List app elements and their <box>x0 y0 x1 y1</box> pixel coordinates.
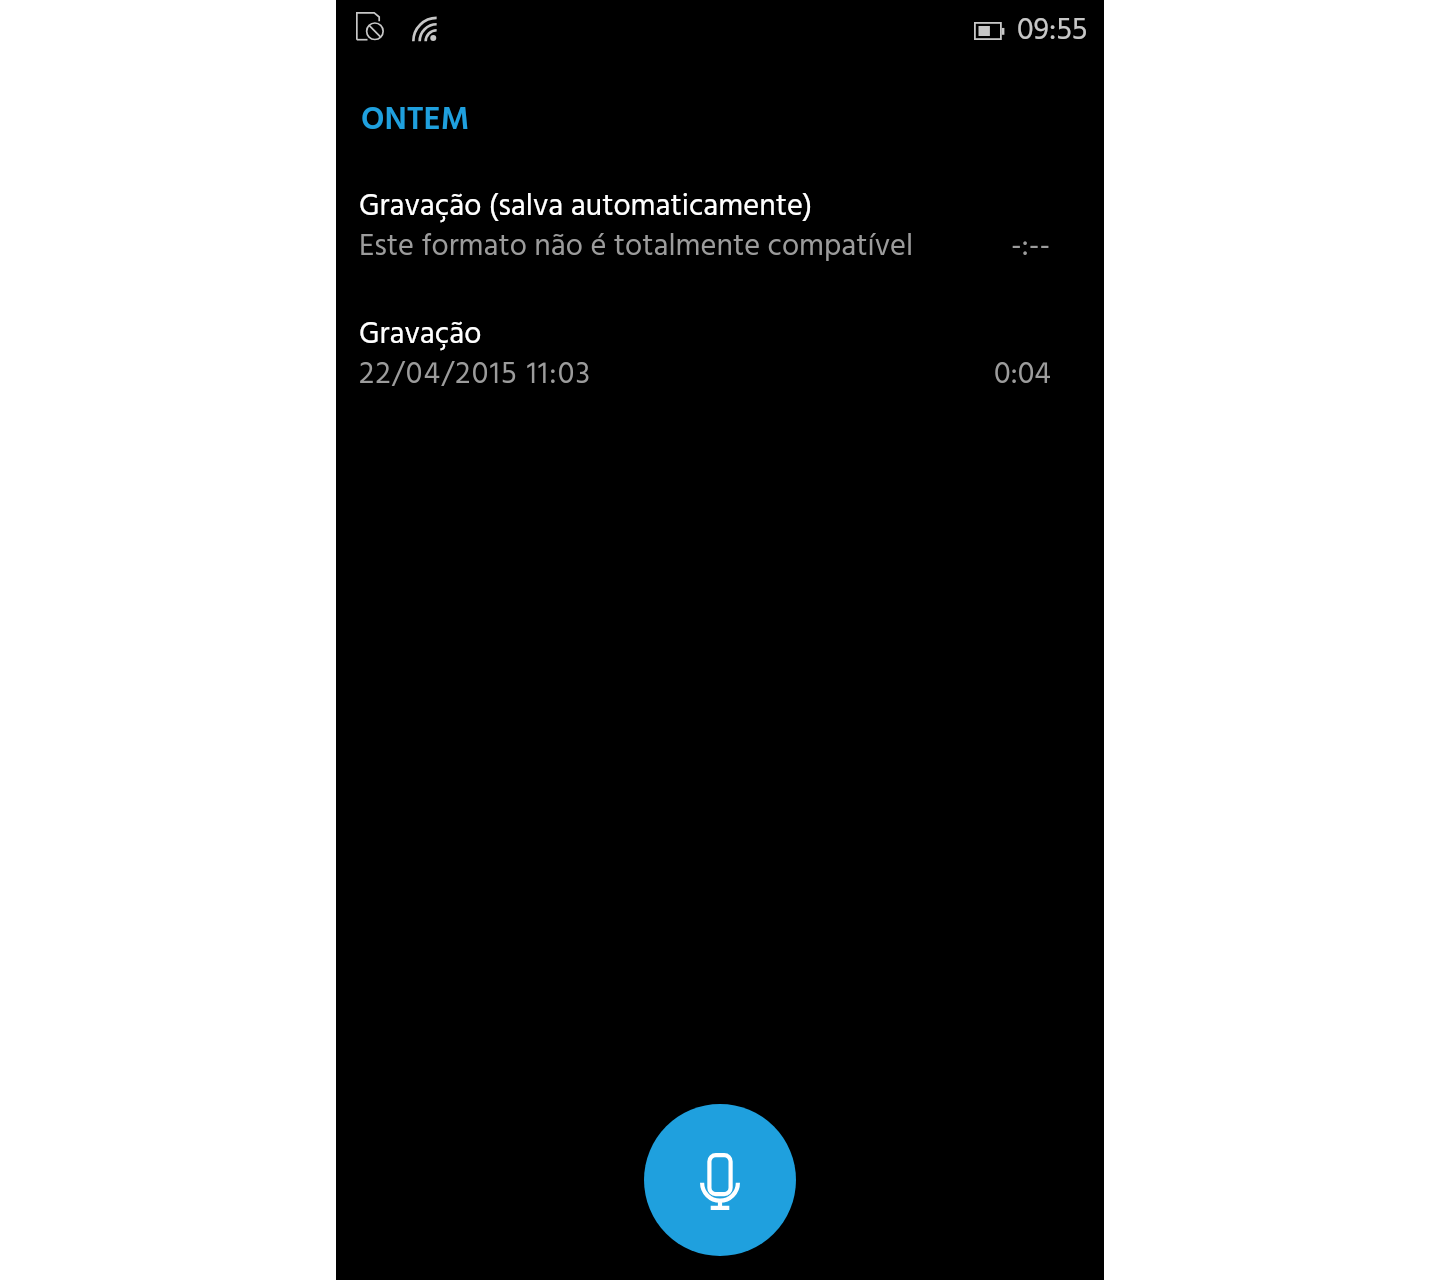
button[interactable]: Gravação <box>336 311 1104 399</box>
other: Wi-Fi <box>412 17 437 42</box>
staticText: 09:55 <box>1017 7 1088 56</box>
staticText: Gravação <box>359 311 482 360</box>
button[interactable]: ONTEM <box>361 95 470 147</box>
staticText: 0:04 <box>994 351 1051 400</box>
button[interactable]: Gravação (salva automaticamente) <box>336 183 1104 271</box>
other: Bateria <box>974 22 1004 40</box>
staticText: Este formato não é totalmente compatível <box>359 223 914 272</box>
button[interactable]: Gravar <box>644 1104 796 1256</box>
staticText: ONTEM <box>361 95 470 147</box>
other: Sem cartão SIM <box>356 12 385 41</box>
staticText: Gravação (salva automaticamente) <box>359 183 813 232</box>
staticText: -:-- <box>1011 223 1051 272</box>
staticText: 22/04/2015 11:03 <box>359 351 592 400</box>
